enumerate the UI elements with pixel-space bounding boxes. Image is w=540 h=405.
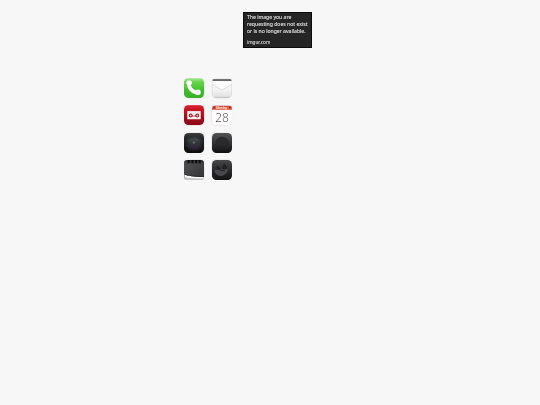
staticText: Monday [216, 106, 228, 110]
staticText: or is no longer available. [247, 28, 306, 35]
button[interactable]: Videos [212, 133, 232, 153]
button[interactable]: Notes [184, 160, 204, 180]
staticText: imgur.com [247, 39, 271, 45]
button[interactable]: Voicemail [184, 105, 204, 125]
staticText: 28 [215, 109, 229, 125]
button[interactable]: Camera [184, 133, 204, 153]
button[interactable]: Phone [184, 78, 204, 98]
button[interactable]: Calendar [212, 105, 232, 125]
button[interactable]: Mail [212, 78, 232, 98]
button[interactable]: Twitter [212, 160, 232, 180]
staticText: The image you are [247, 14, 292, 21]
staticText: requesting does not exist [247, 21, 308, 28]
